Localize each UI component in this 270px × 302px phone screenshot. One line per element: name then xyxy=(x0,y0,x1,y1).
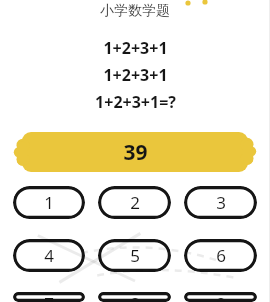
staticText: 1 xyxy=(44,191,54,214)
staticText: 8 xyxy=(130,292,140,302)
staticText: 39 xyxy=(123,138,148,167)
staticText: 1+2+3+1 xyxy=(103,37,168,59)
button[interactable]: 3 xyxy=(184,186,257,219)
staticText: 5 xyxy=(130,244,140,267)
button[interactable]: 5 xyxy=(98,239,171,272)
button[interactable]: 39 xyxy=(10,130,260,174)
button[interactable]: 8 xyxy=(98,292,171,302)
button[interactable]: 6 xyxy=(184,239,257,272)
button[interactable]: 7 xyxy=(13,292,85,302)
staticText: 9 xyxy=(216,292,226,302)
staticText: 2 xyxy=(130,191,140,214)
staticText: 1+2+3+1=? xyxy=(95,91,176,113)
button[interactable]: 1 xyxy=(13,186,85,219)
staticText: 1+2+3+1 xyxy=(103,64,168,86)
staticText: 4 xyxy=(44,244,54,267)
staticText: 6 xyxy=(216,244,226,267)
button[interactable]: 9 xyxy=(184,292,257,302)
staticText: 3 xyxy=(216,191,226,214)
staticText: 7 xyxy=(44,292,54,302)
staticText: 小学数学题 xyxy=(100,2,170,20)
button[interactable]: 4 xyxy=(13,239,85,272)
button[interactable]: 2 xyxy=(98,186,171,219)
